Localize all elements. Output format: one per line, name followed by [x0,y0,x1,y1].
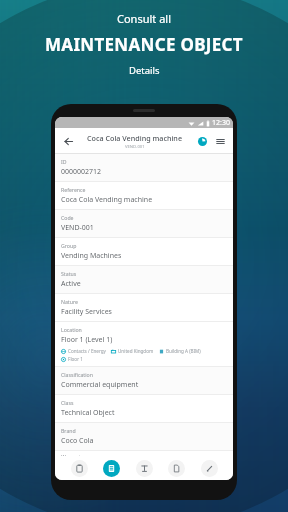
staticText: Warranty [61,453,84,456]
button[interactable]: Building A (BIM) [159,348,206,354]
button[interactable]: ID [55,154,233,181]
button[interactable]: Menu [212,133,228,149]
staticText: Status [61,270,77,277]
staticText: Technical Object [61,408,115,418]
staticText: Active [61,279,81,289]
staticText: VEND-001 [61,223,94,233]
staticText: Classification [61,371,93,378]
button[interactable]: Location [55,322,233,366]
staticText: 0000002712 [61,167,102,177]
staticText: Coca Cola Vending machine [61,195,153,205]
staticText: ID [61,158,67,165]
button[interactable]: Class [55,395,233,422]
button[interactable]: Details [103,460,120,477]
staticText: Brand [61,427,76,434]
button[interactable]: Group [55,238,233,265]
staticText: Facility Services [61,307,112,317]
button[interactable]: Documents [168,460,185,477]
staticText: MAINTENANCE OBJECT [45,33,243,56]
button[interactable]: Nature [55,294,233,321]
button[interactable]: Contacts / Energy [61,348,111,354]
button[interactable]: Floor 1 [61,356,88,362]
staticText: Building A (BIM) [166,348,201,354]
staticText: Coca Cola Vending machine [87,133,183,143]
staticText: Details [129,64,160,77]
button[interactable]: Tools [136,460,153,477]
staticText: Code [61,214,74,221]
staticText: 12:30 [212,118,230,128]
button[interactable]: Summary [71,460,88,477]
button[interactable]: Code [55,210,233,237]
staticText: VEND-001 [125,144,145,150]
button[interactable]: United Kingdom [111,348,159,354]
staticText: Reference [61,186,86,193]
staticText: Nature [61,298,78,305]
button[interactable]: Status [55,266,233,293]
staticText: Commercial equipment [61,380,139,390]
staticText: Coco Cola [61,436,94,446]
staticText: Contacts / Energy [68,348,106,354]
button[interactable]: Back [60,133,76,149]
button[interactable]: Classification [55,367,233,394]
staticText: Group [61,242,77,249]
button[interactable]: App logo [194,133,210,149]
staticText: Class [61,399,74,406]
staticText: Vending Machines [61,251,122,261]
staticText: United Kingdom [118,348,154,354]
staticText: Consult all [117,11,171,26]
button[interactable]: Attachments [201,460,218,477]
button[interactable]: Brand [55,423,233,450]
staticText: Location [61,326,82,333]
button[interactable]: Reference [55,182,233,209]
staticText: Floor 1 (Level 1) [61,335,113,345]
staticText: Floor 1 [68,356,83,362]
